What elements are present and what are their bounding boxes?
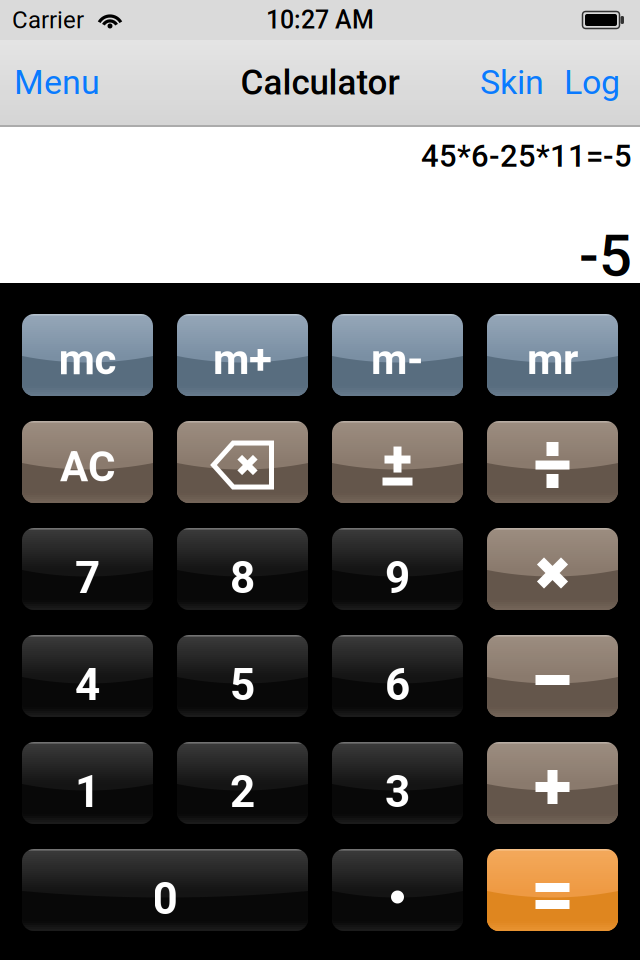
button[interactable]: Multiply xyxy=(487,528,618,610)
staticText: Menu xyxy=(14,63,100,102)
button[interactable]: 7 xyxy=(22,528,153,610)
button[interactable]: Skin xyxy=(480,63,554,102)
button[interactable]: Divide xyxy=(487,421,618,503)
button[interactable]: m- xyxy=(332,314,463,396)
button[interactable]: Delete xyxy=(177,421,308,503)
staticText: 45*6-25*11=-5 xyxy=(421,138,632,174)
staticText: 8 xyxy=(230,552,255,604)
staticText: m- xyxy=(371,335,424,385)
button[interactable]: Menu xyxy=(0,63,100,102)
staticText: 1 xyxy=(75,766,100,818)
button[interactable]: Plus minus xyxy=(332,421,463,503)
staticText: 4 xyxy=(75,659,100,711)
staticText: Skin xyxy=(480,63,544,102)
staticText: 5 xyxy=(230,659,255,711)
staticText: 9 xyxy=(385,552,410,604)
staticText: 6 xyxy=(385,659,410,711)
button[interactable]: AC xyxy=(22,421,153,503)
button[interactable]: Equals xyxy=(487,849,618,931)
staticText: 2 xyxy=(230,766,255,818)
staticText: Carrier xyxy=(12,6,84,34)
button[interactable]: 9 xyxy=(332,528,463,610)
button[interactable]: 0 xyxy=(22,849,308,931)
staticText: Log xyxy=(564,63,620,102)
staticText: 10:27 AM xyxy=(266,5,374,35)
staticText: 7 xyxy=(75,552,100,604)
button[interactable]: mr xyxy=(487,314,618,396)
button[interactable]: 3 xyxy=(332,742,463,824)
button[interactable]: 4 xyxy=(22,635,153,717)
staticText: 0 xyxy=(152,873,177,925)
button[interactable]: 5 xyxy=(177,635,308,717)
button[interactable]: Log xyxy=(554,63,640,102)
button[interactable]: 8 xyxy=(177,528,308,610)
button[interactable]: mc xyxy=(22,314,153,396)
button[interactable]: 1 xyxy=(22,742,153,824)
staticText: m+ xyxy=(213,335,272,385)
staticText: AC xyxy=(60,442,115,492)
button[interactable]: 2 xyxy=(177,742,308,824)
staticText: Calculator xyxy=(240,62,399,103)
staticText: mr xyxy=(527,335,578,385)
button[interactable]: Plus xyxy=(487,742,618,824)
button[interactable]: Minus xyxy=(487,635,618,717)
button[interactable]: 6 xyxy=(332,635,463,717)
button[interactable]: m+ xyxy=(177,314,308,396)
staticText: 3 xyxy=(385,766,410,818)
staticText: -5 xyxy=(579,222,632,290)
button[interactable]: Decimal point xyxy=(332,849,463,931)
staticText: mc xyxy=(58,335,116,385)
